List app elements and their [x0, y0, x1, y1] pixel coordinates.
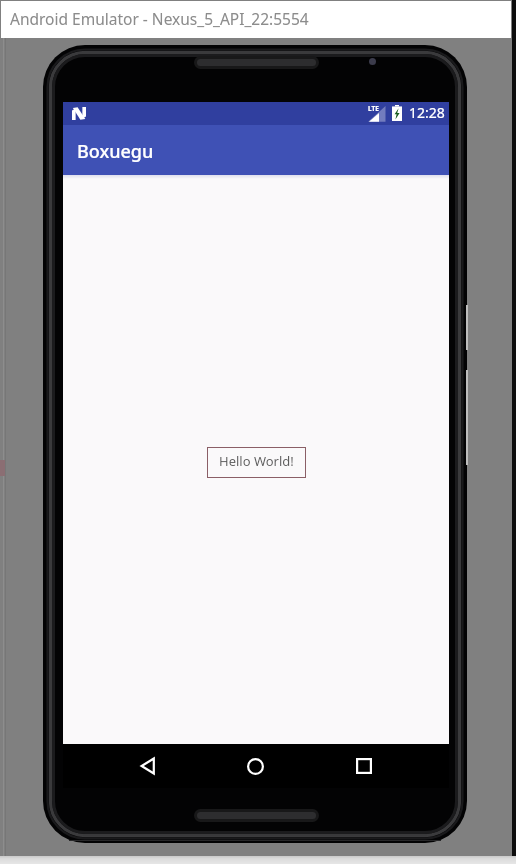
staticText: 12:28: [409, 103, 445, 122]
button[interactable]: Back: [125, 744, 169, 788]
staticText: LTE: [368, 104, 379, 113]
button[interactable]: Hello World!: [207, 447, 306, 478]
button[interactable]: Home: [233, 744, 277, 788]
staticText: Android Emulator - Nexus_5_API_22:5554: [10, 8, 309, 29]
staticText: Boxuegu: [77, 139, 154, 164]
button[interactable]: Recent apps: [342, 744, 386, 788]
staticText: Hello World!: [219, 452, 294, 470]
